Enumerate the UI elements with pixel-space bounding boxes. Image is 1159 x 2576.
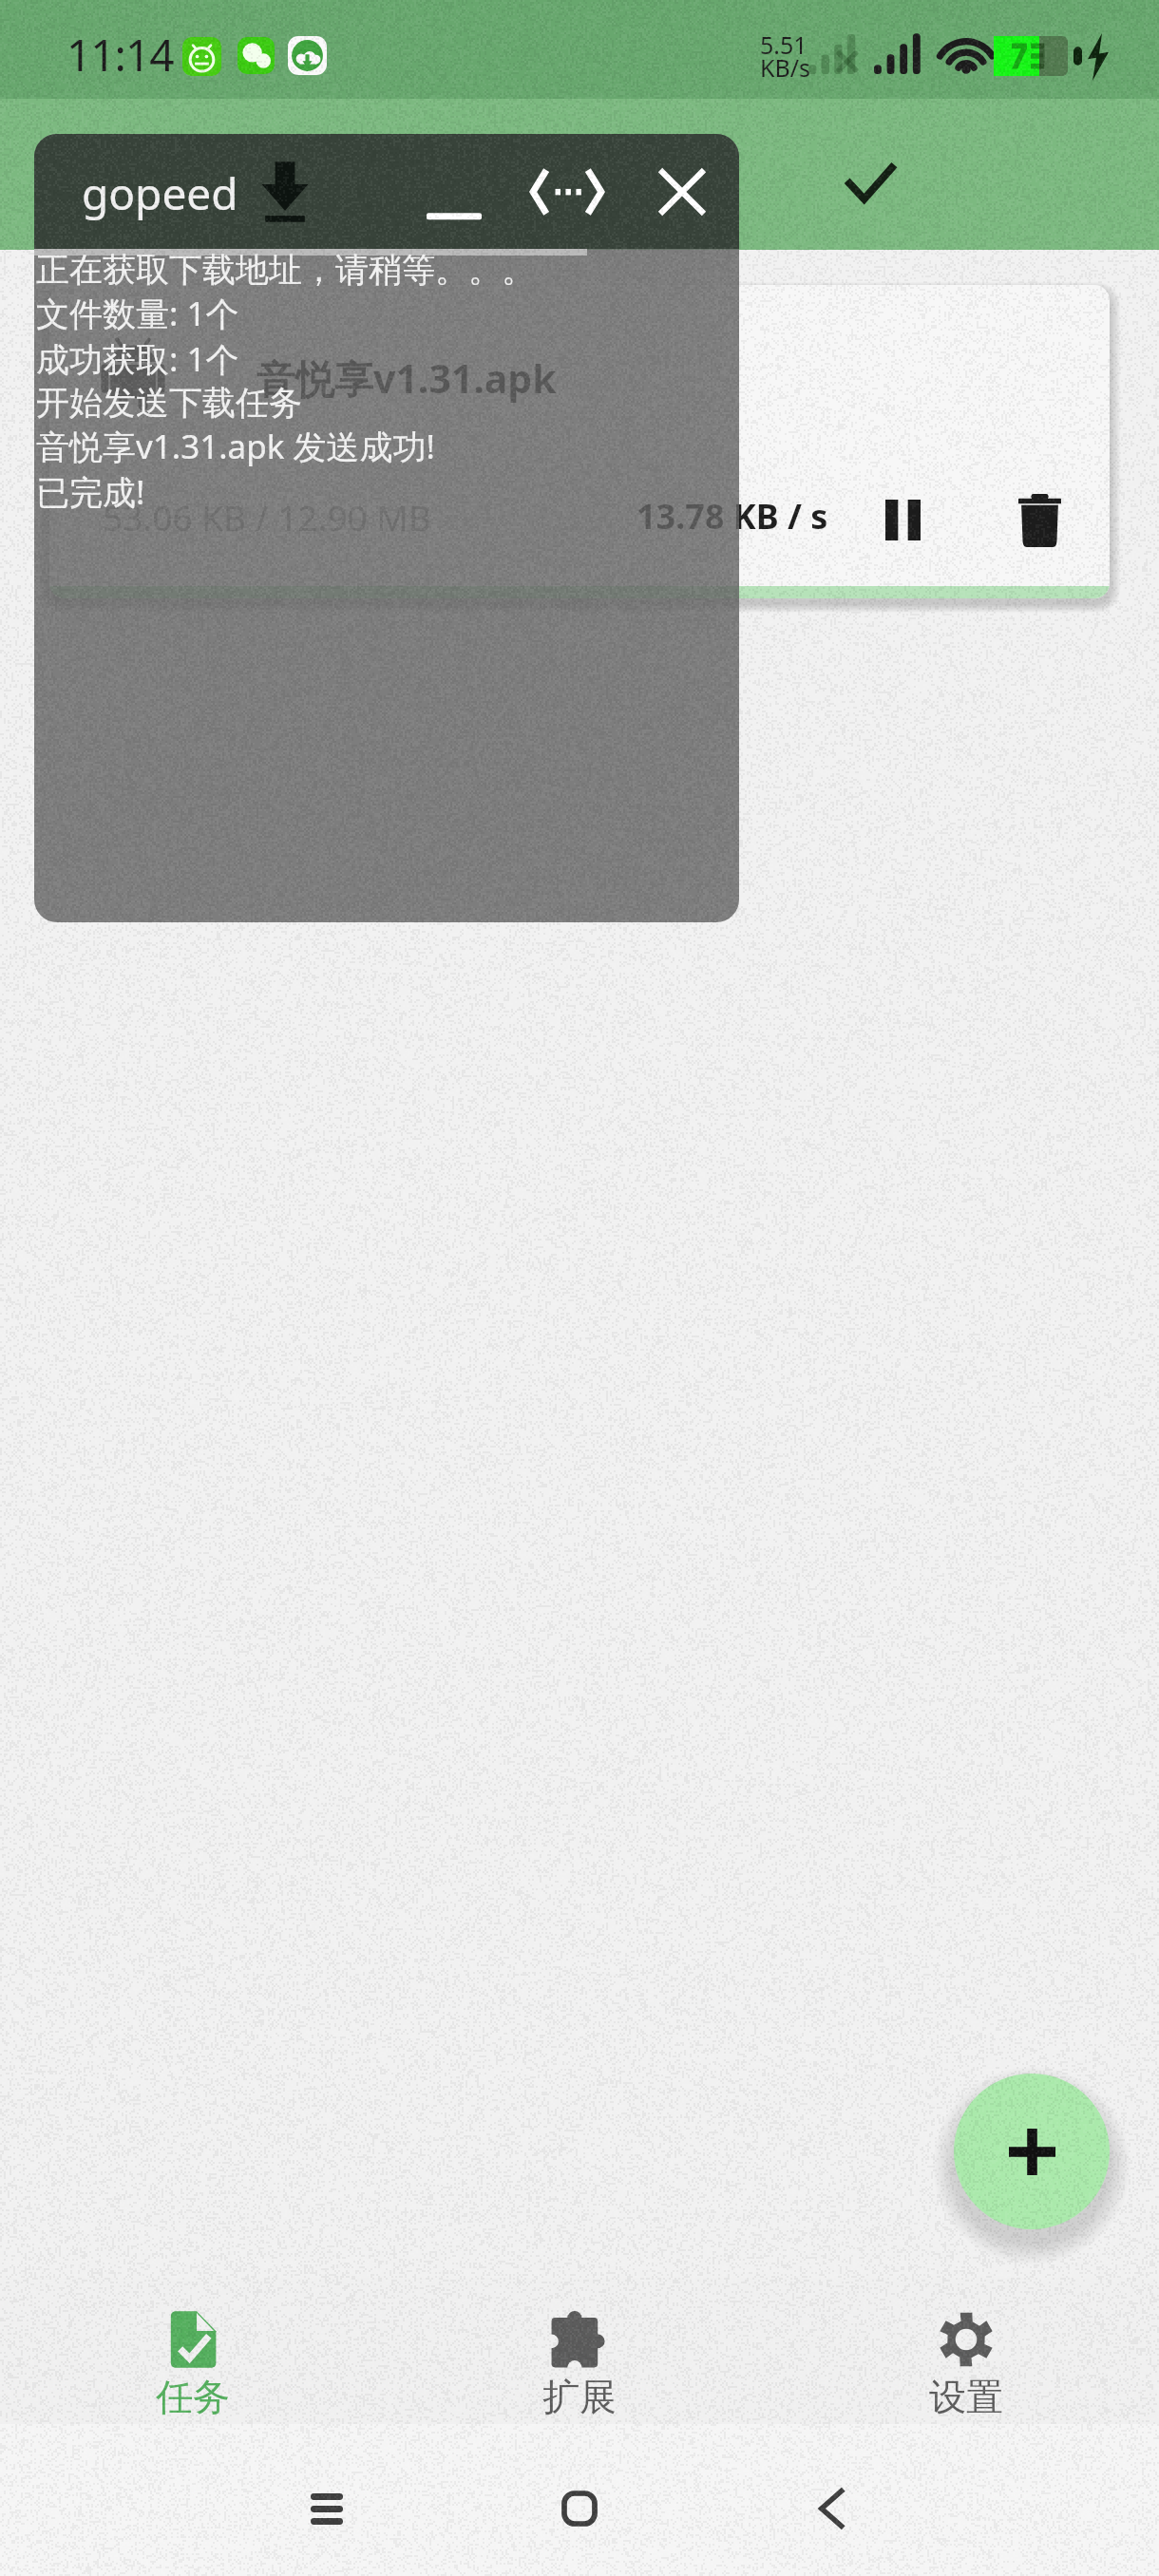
staticText: 任务 — [156, 2374, 230, 2420]
button[interactable]: 任务 — [0, 2278, 386, 2424]
button[interactable]: 设置 — [772, 2278, 1159, 2424]
button[interactable]: Pause — [855, 472, 950, 567]
staticText: 开始发送下载任务 — [36, 382, 302, 424]
staticText: 11:14 — [66, 25, 174, 85]
button[interactable]: Delete — [992, 473, 1087, 568]
button[interactable]: Add download — [954, 2074, 1110, 2229]
button[interactable]: Close — [625, 134, 739, 249]
button[interactable]: Recents — [251, 2433, 403, 2576]
button[interactable]: Minimize — [397, 134, 511, 249]
staticText: 音悦享v1.31.apk 发送成功! — [36, 424, 435, 469]
staticText: 正在获取下载地址，请稍等。。。 — [36, 249, 535, 291]
staticText: 已完成! — [36, 469, 145, 515]
staticText: 扩展 — [542, 2374, 617, 2420]
button[interactable]: 扩展 — [386, 2278, 772, 2424]
button[interactable]: Download — [228, 134, 342, 249]
staticText: 5.51 — [760, 28, 807, 61]
staticText: KB/s — [760, 51, 811, 84]
staticText: 文件数量: 1个 — [36, 291, 239, 336]
staticText: gopeed — [82, 163, 238, 223]
staticText: 音悦享v1.31.apk — [256, 351, 557, 405]
button[interactable]: Home — [503, 2433, 655, 2576]
staticText: 53.06 KB / 12.90 MB — [103, 493, 431, 540]
button[interactable]: Resize — [510, 134, 624, 249]
staticText: 设置 — [929, 2374, 1003, 2420]
staticText: 成功获取: 1个 — [36, 336, 239, 382]
button[interactable]: Back — [756, 2433, 908, 2576]
staticText: 13.78 KB / s — [636, 493, 828, 540]
button[interactable]: 音悦享v1.31.apk — [49, 285, 1110, 598]
button[interactable]: Select all — [804, 106, 937, 257]
